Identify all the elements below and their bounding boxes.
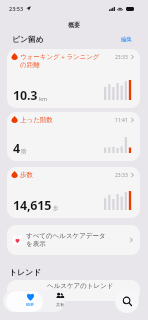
button[interactable]: 編集 <box>121 34 132 41</box>
staticText: 10.3 <box>13 87 38 104</box>
staticText: 歩数 <box>20 171 113 179</box>
staticText: km <box>39 95 48 102</box>
staticText: 階 <box>21 148 27 155</box>
staticText: トレンド <box>9 267 41 277</box>
button[interactable]: 共有 <box>42 290 65 312</box>
staticText: 11:41 <box>115 117 128 124</box>
staticText: 共有 <box>56 302 64 307</box>
button[interactable]: 上った階数 <box>7 112 140 161</box>
staticText: 上った階数 <box>20 116 113 124</box>
staticText: 23:33 <box>115 172 128 179</box>
staticText: 23:53 <box>9 5 24 12</box>
button[interactable]: 概要 <box>12 290 48 312</box>
staticText: 14,615 <box>13 197 52 214</box>
button[interactable]: ヘルスケアのトレンド <box>7 280 140 301</box>
staticText: ヘルスケアのトレンド <box>47 282 114 290</box>
staticText: 編集 <box>121 36 132 43</box>
button[interactable]: 検索 <box>115 289 139 313</box>
staticText: ピン留め <box>12 34 44 44</box>
staticText: 概要 <box>68 21 80 29</box>
staticText: すべてのヘルスケアデータ を表示 <box>26 232 130 248</box>
staticText: 4 <box>13 140 20 157</box>
button[interactable]: 歩数 <box>7 167 140 218</box>
staticText: ウォーキング＋ランニング の距離 <box>20 53 113 69</box>
staticText: 23:33 <box>115 54 128 61</box>
button[interactable]: ウォーキング＋ランニング の距離 <box>7 49 140 108</box>
staticText: 概要 <box>26 302 34 307</box>
staticText: 歩 <box>53 205 59 212</box>
button[interactable]: すべてのヘルスケアデータ を表示 <box>7 225 140 255</box>
